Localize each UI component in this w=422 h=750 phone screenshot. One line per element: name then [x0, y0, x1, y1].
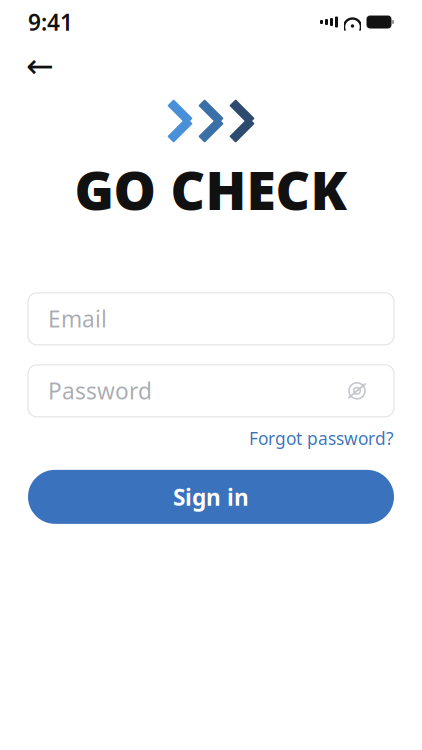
staticText: Sign in — [173, 482, 249, 512]
staticText: GO CHECK — [74, 154, 347, 225]
button[interactable]: Sign in — [28, 470, 394, 524]
button[interactable]: Show password — [340, 374, 374, 408]
staticText: Forgot password? — [249, 427, 394, 450]
button[interactable]: Back — [18, 44, 62, 88]
staticText: Email — [48, 304, 107, 334]
staticText: ← — [26, 47, 54, 85]
button[interactable]: Forgot password? — [249, 427, 394, 450]
staticText: Password — [48, 376, 152, 406]
staticText: 9:41 — [28, 7, 73, 37]
